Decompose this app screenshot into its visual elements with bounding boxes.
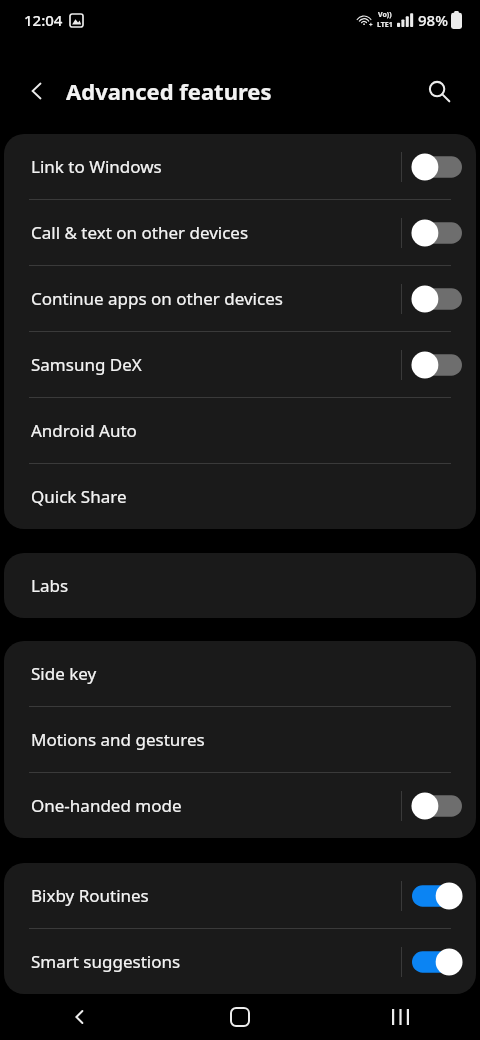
button[interactable]: Back — [0, 994, 160, 1040]
staticText: Link to Windows — [31, 155, 162, 178]
staticText: Call & text on other devices — [31, 221, 249, 244]
button[interactable]: Smart suggestions toggle — [412, 948, 462, 976]
staticText: Labs — [31, 574, 69, 597]
staticText: 98% — [418, 10, 448, 30]
staticText: Quick Share — [31, 485, 127, 508]
button[interactable]: Samsung DeX toggle — [412, 351, 462, 379]
button[interactable]: Side key — [4, 641, 476, 706]
staticText: One-handed mode — [31, 794, 182, 817]
button[interactable]: Continue apps on other devices toggle — [412, 285, 462, 313]
button[interactable]: Labs — [4, 553, 476, 618]
button[interactable]: Call & text on other devices toggle — [412, 219, 462, 247]
staticText: Vo)) — [378, 10, 392, 20]
staticText: Advanced features — [66, 76, 272, 106]
button[interactable]: Samsung DeX — [4, 332, 476, 397]
staticText: Smart suggestions — [31, 950, 181, 973]
button[interactable]: Motions and gestures — [4, 707, 476, 772]
staticText: Motions and gestures — [31, 728, 205, 751]
button[interactable]: Quick Share — [4, 464, 476, 529]
staticText: Samsung DeX — [31, 353, 142, 376]
button[interactable]: Continue apps on other devices — [4, 266, 476, 331]
button[interactable]: Smart suggestions — [4, 929, 476, 994]
button[interactable]: Link to Windows — [4, 134, 476, 199]
button[interactable]: Home — [160, 994, 320, 1040]
staticText: Continue apps on other devices — [31, 287, 283, 310]
button[interactable]: Call & text on other devices — [4, 200, 476, 265]
staticText: Bixby Routines — [31, 884, 149, 907]
button[interactable]: One-handed mode — [4, 773, 476, 838]
staticText: 12:04 — [24, 10, 63, 30]
button[interactable]: Bixby Routines — [4, 863, 476, 928]
button[interactable]: One-handed mode toggle — [412, 792, 462, 820]
staticText: Android Auto — [31, 419, 137, 442]
button[interactable]: Back — [14, 68, 60, 114]
button[interactable]: Search — [416, 68, 462, 114]
button[interactable]: Recent apps — [320, 994, 480, 1040]
button[interactable]: Android Auto — [4, 398, 476, 463]
button[interactable]: Link to Windows toggle — [412, 153, 462, 181]
staticText: Side key — [31, 662, 97, 685]
button[interactable]: Bixby Routines toggle — [412, 882, 462, 910]
staticText: LTE1 — [377, 20, 393, 30]
